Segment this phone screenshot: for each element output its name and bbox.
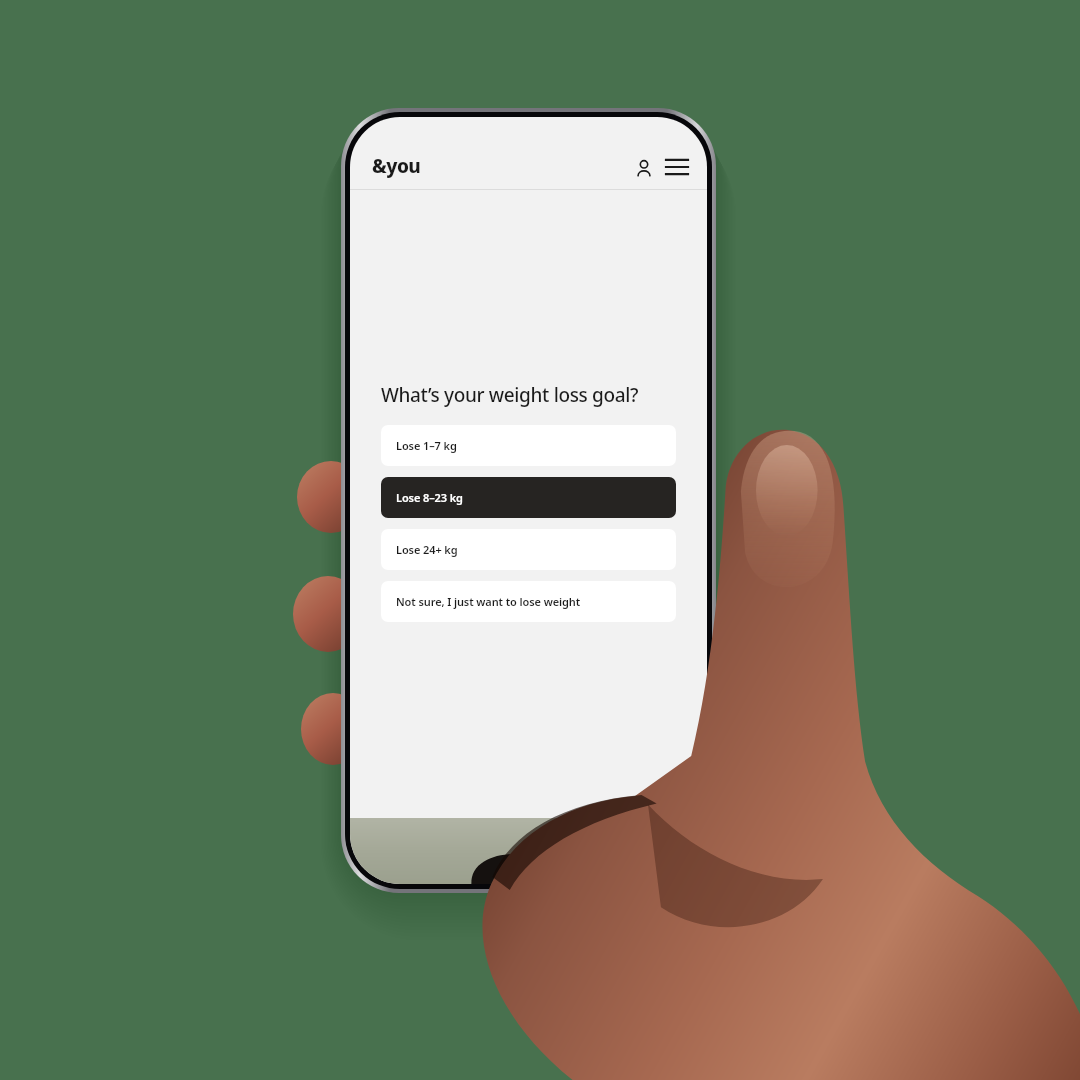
staticText: Lose 8–23 kg bbox=[396, 490, 463, 505]
button[interactable]: Lose 24+ kg bbox=[381, 529, 676, 570]
button[interactable]: Lose 1–7 kg bbox=[381, 425, 676, 466]
button[interactable]: &you bbox=[372, 153, 421, 179]
staticText: What’s your weight loss goal? bbox=[381, 382, 639, 408]
button[interactable]: Menu bbox=[663, 153, 691, 181]
button[interactable]: Account bbox=[631, 155, 657, 181]
button[interactable]: Not sure, I just want to lose weight bbox=[381, 581, 676, 622]
staticText: Lose 24+ kg bbox=[396, 542, 458, 557]
staticText: Lose 1–7 kg bbox=[396, 438, 457, 453]
staticText: &you bbox=[372, 153, 421, 179]
button[interactable]: Lose 8–23 kg bbox=[381, 477, 676, 518]
staticText: Not sure, I just want to lose weight bbox=[396, 594, 581, 609]
